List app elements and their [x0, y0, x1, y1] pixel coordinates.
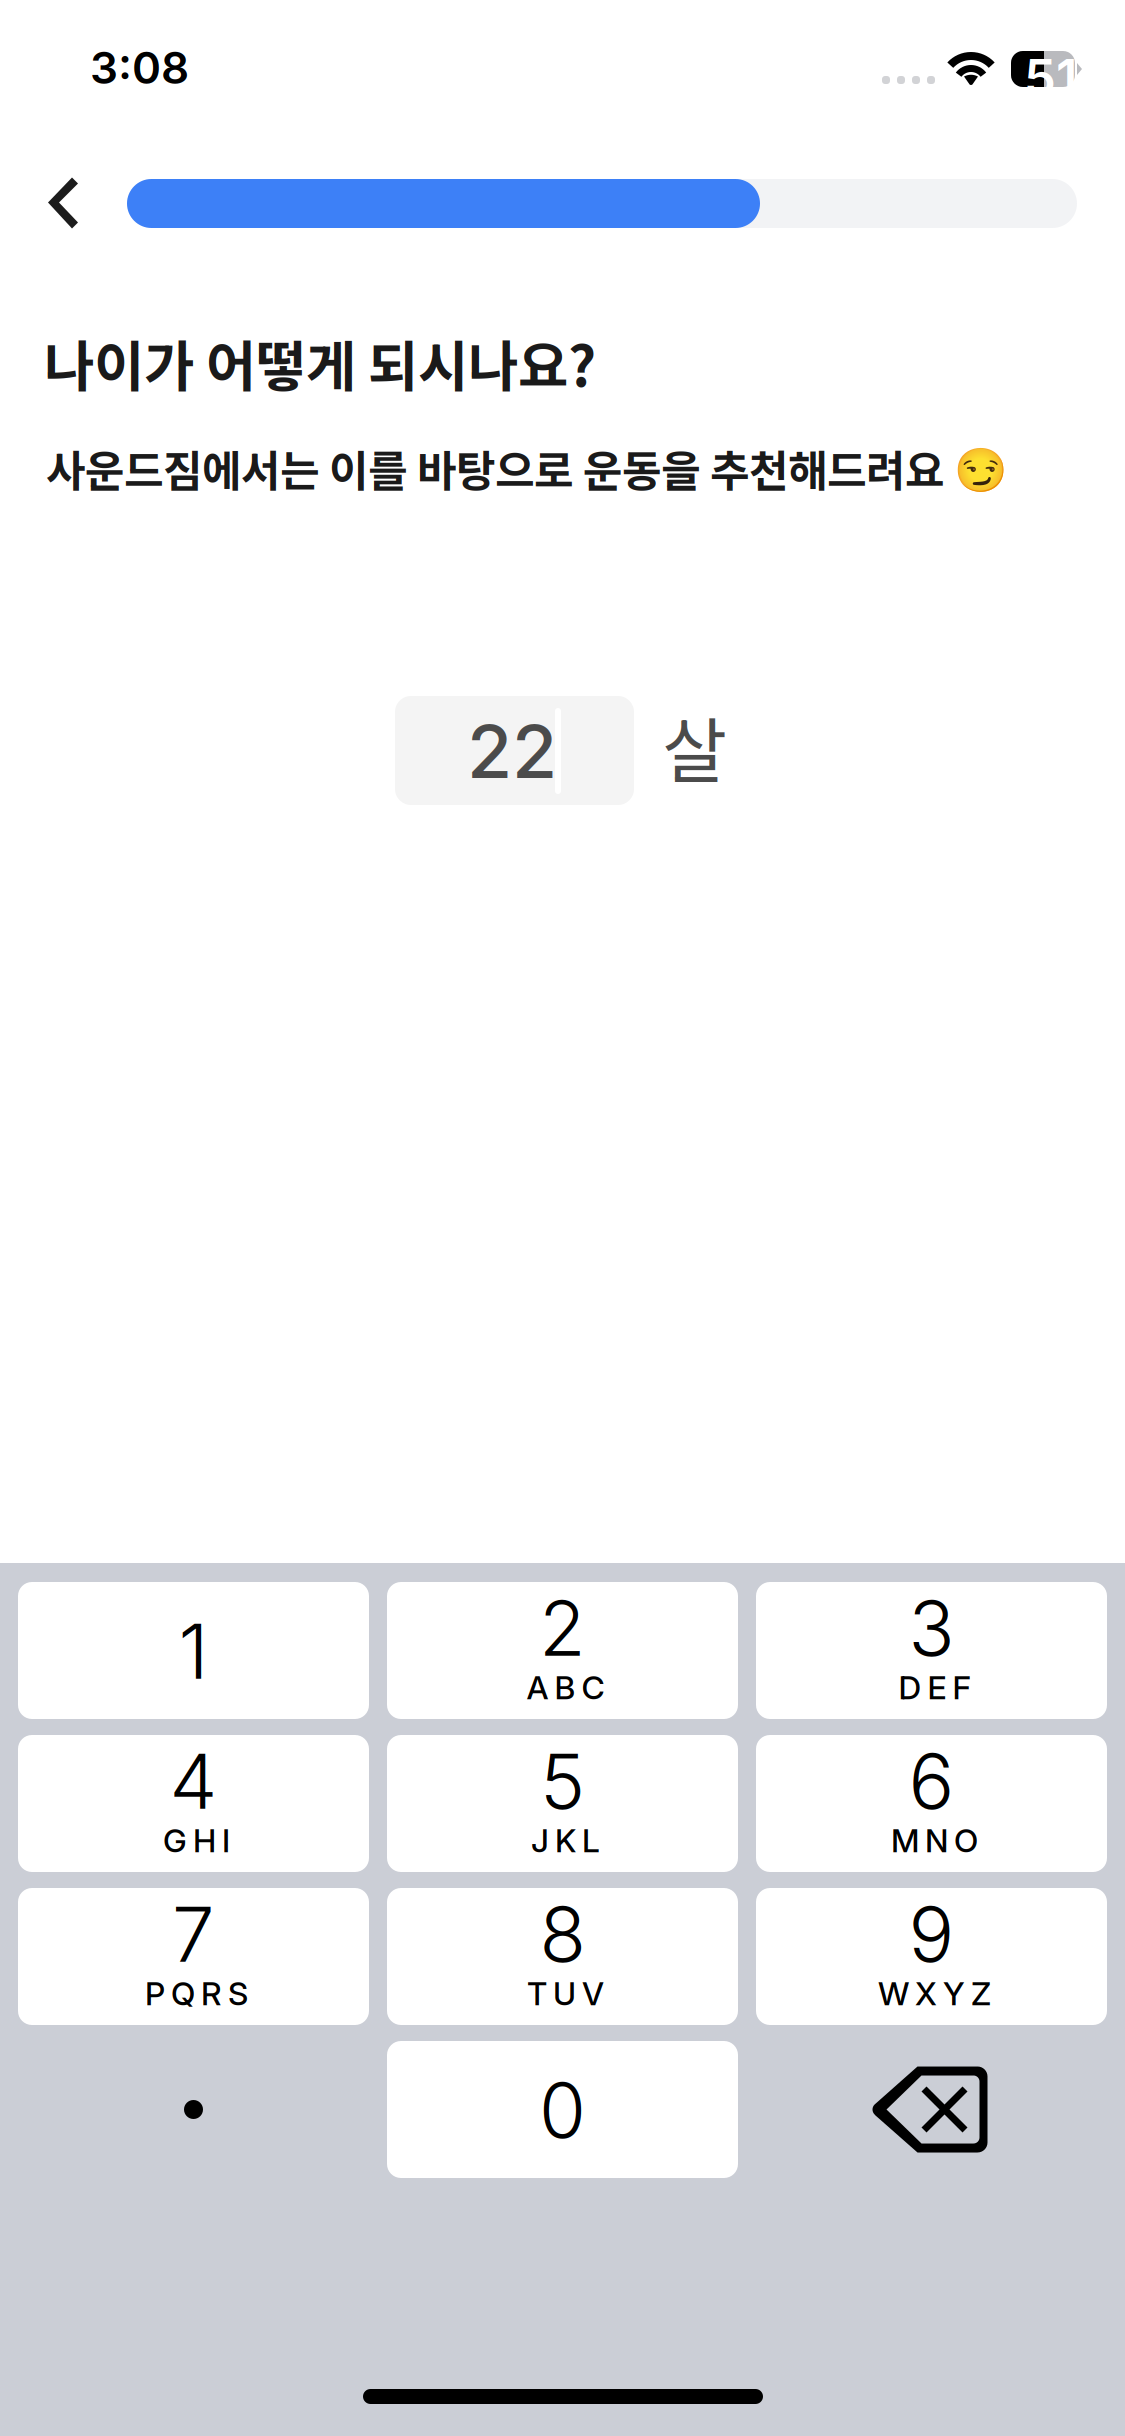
staticText: 22 — [467, 707, 557, 796]
staticText: GHI — [163, 1821, 230, 1860]
button[interactable]: 0 — [387, 2041, 738, 2178]
staticText: 8 — [539, 1888, 585, 1980]
button[interactable]: Delete — [756, 2041, 1107, 2178]
staticText: MNO — [891, 1821, 978, 1860]
staticText: 3:08 — [90, 41, 189, 94]
staticText: 51 — [1024, 47, 1077, 108]
staticText: DEF — [898, 1668, 970, 1707]
staticText: TUV — [527, 1974, 604, 2013]
staticText: 4 — [169, 1735, 217, 1827]
staticText: 3 — [908, 1582, 954, 1674]
staticText: 6 — [908, 1735, 954, 1827]
staticText: PQRS — [145, 1974, 248, 2013]
staticText: 2 — [539, 1582, 586, 1674]
button[interactable]: 1 — [18, 1582, 369, 1719]
button[interactable]: Back — [15, 155, 111, 251]
button[interactable]: Decimal point — [18, 2041, 369, 2178]
staticText: 나이가 어떻게 되시나요? — [44, 323, 596, 402]
staticText: 1 — [178, 1605, 208, 1697]
button[interactable]: 3 — [756, 1582, 1107, 1719]
staticText: WXYZ — [878, 1974, 991, 2013]
staticText: 9 — [908, 1888, 954, 1980]
staticText: 사운드짐에서는 이를 바탕으로 운동을 추천해드려요 😏 — [46, 437, 1007, 499]
button[interactable]: 9 — [756, 1888, 1107, 2025]
staticText: ABC — [526, 1668, 604, 1707]
button[interactable]: 6 — [756, 1735, 1107, 1872]
button[interactable]: 8 — [387, 1888, 738, 2025]
staticText: 살 — [662, 695, 727, 797]
button[interactable]: 4 — [18, 1735, 369, 1872]
staticText: 7 — [172, 1888, 215, 1980]
button[interactable]: 5 — [387, 1735, 738, 1872]
button[interactable]: 7 — [18, 1888, 369, 2025]
button[interactable]: 2 — [387, 1582, 738, 1719]
staticText: JKL — [531, 1821, 600, 1860]
staticText: 0 — [539, 2064, 586, 2156]
staticText: 5 — [540, 1735, 585, 1827]
